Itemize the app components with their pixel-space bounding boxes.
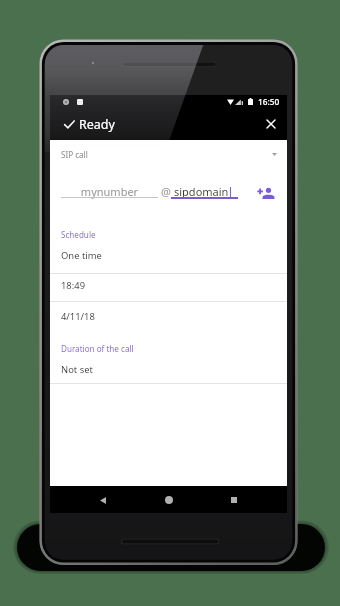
- button[interactable]: Duration of the call: [50, 336, 287, 387]
- button[interactable]: Schedule: [50, 222, 287, 272]
- button[interactable]: Back: [90, 487, 116, 513]
- button[interactable]: Ready: [50, 108, 287, 140]
- staticText: 4/11/18: [61, 310, 95, 323]
- staticText: sipdomain: [174, 184, 229, 199]
- staticText: Ready: [79, 116, 115, 133]
- staticText: @: [161, 184, 171, 199]
- button[interactable]: Close: [260, 113, 282, 135]
- button[interactable]: 18:49: [50, 271, 287, 300]
- staticText: Schedule: [61, 229, 96, 240]
- staticText: mynumber: [61, 184, 158, 199]
- staticText: SIP call: [61, 149, 88, 160]
- button[interactable]: 4/11/18: [50, 301, 287, 332]
- button[interactable]: Add contact: [253, 178, 279, 203]
- staticText: Not set: [61, 363, 93, 376]
- staticText: 18:49: [61, 279, 86, 292]
- button[interactable]: Home: [156, 487, 182, 513]
- button[interactable]: SIP call: [50, 140, 287, 168]
- staticText: One time: [61, 249, 102, 262]
- staticText: Duration of the call: [61, 343, 134, 354]
- staticText: 16:50: [258, 96, 280, 107]
- button[interactable]: Recents: [221, 487, 247, 513]
